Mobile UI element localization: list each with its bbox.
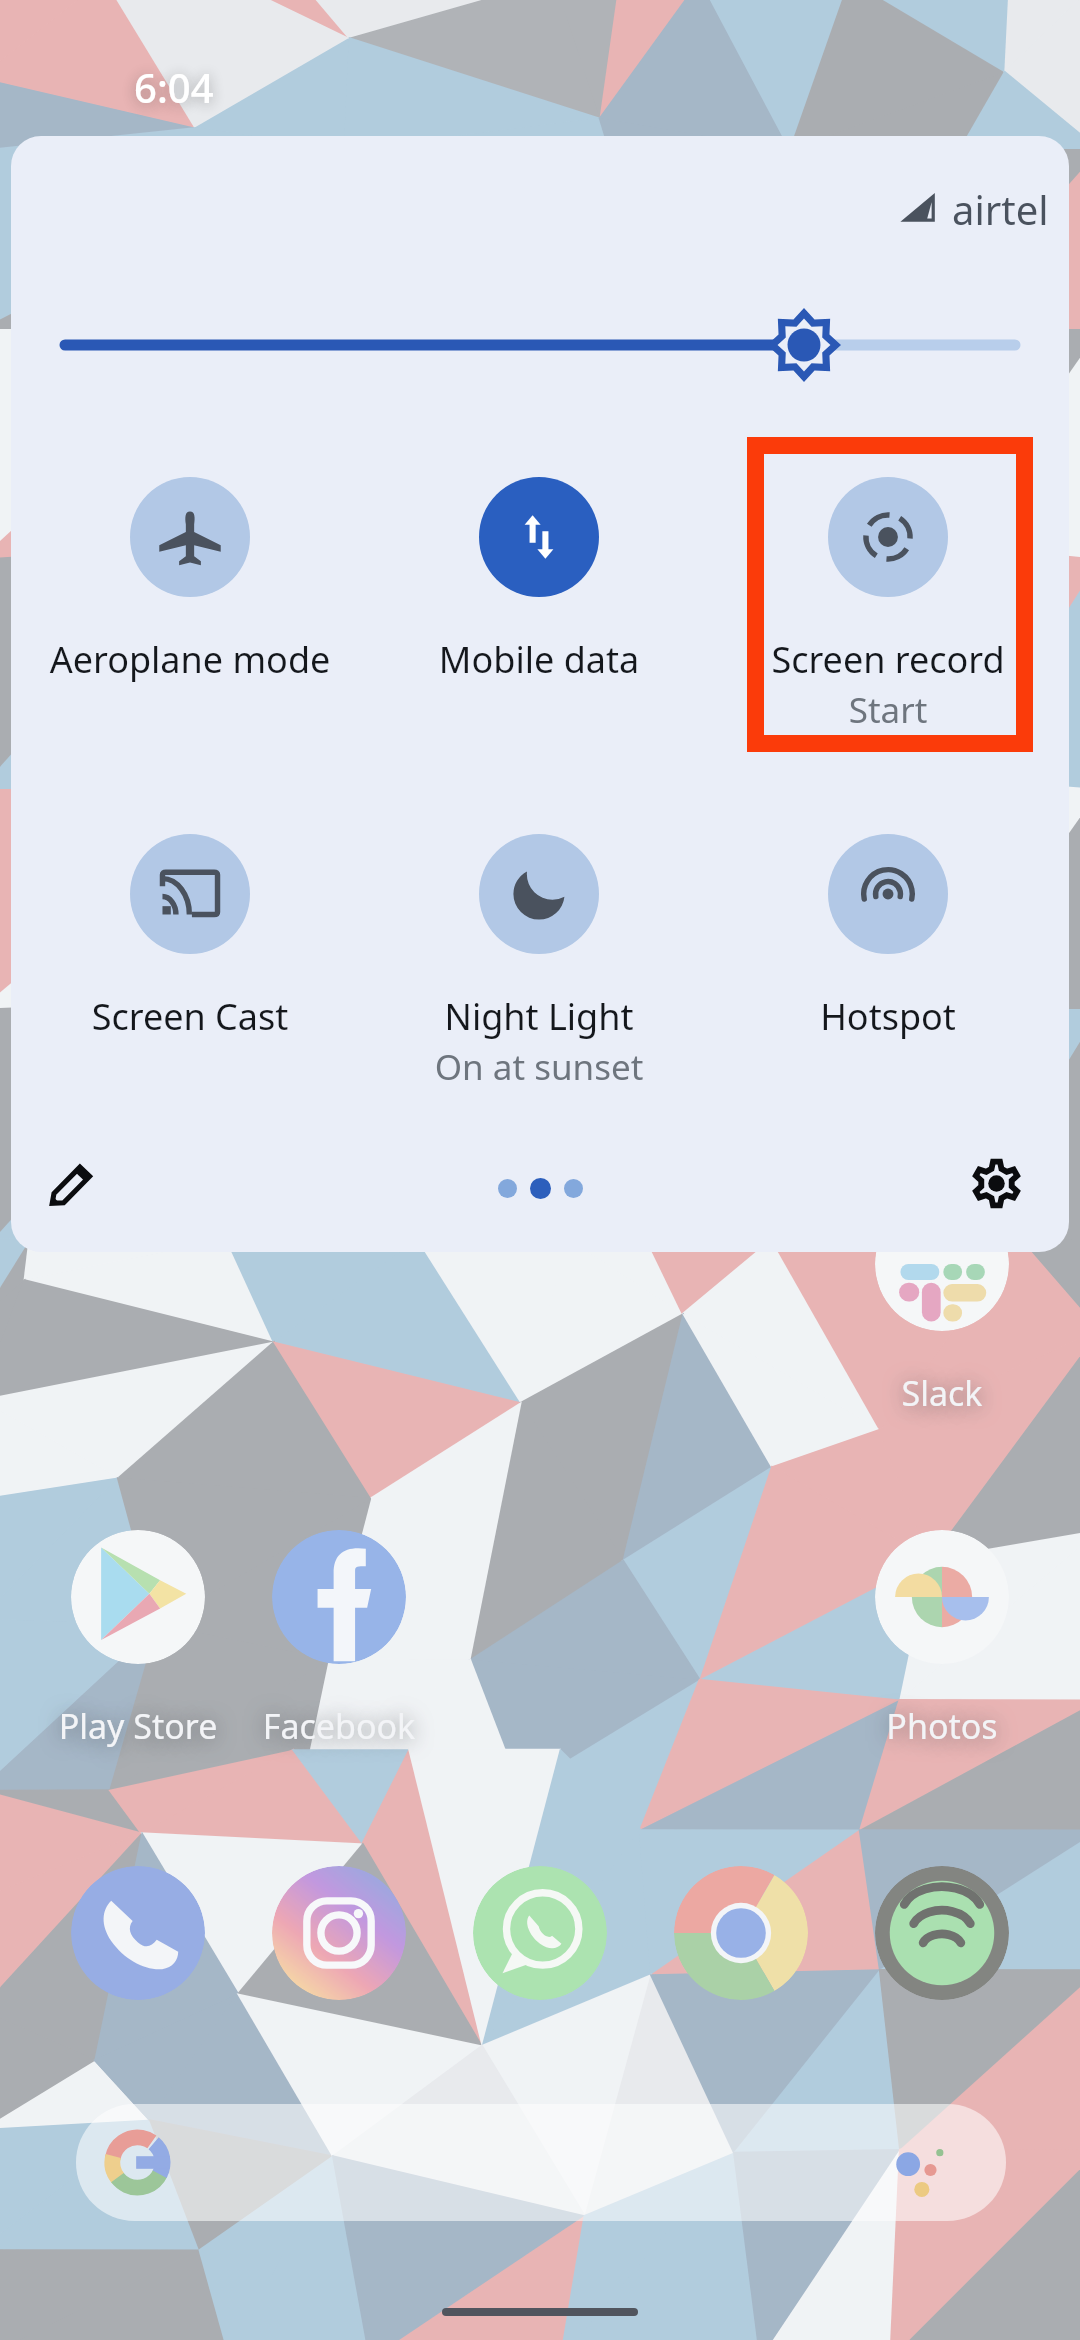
staticText: Screen Cast bbox=[20, 992, 360, 1041]
button[interactable]: Night Light bbox=[369, 834, 709, 1091]
button[interactable]: Play Store bbox=[38, 1530, 238, 1751]
staticText: 6:04 bbox=[134, 60, 214, 114]
button[interactable]: Slack bbox=[842, 1197, 1042, 1418]
button[interactable]: Chrome bbox=[674, 1866, 808, 2000]
button[interactable]: Spotify bbox=[875, 1866, 1009, 2000]
staticText: Screen record bbox=[718, 635, 1058, 684]
button[interactable]: Mobile data bbox=[369, 477, 709, 684]
staticText: Screen record bbox=[718, 635, 1058, 684]
staticText: On at sunset bbox=[369, 1043, 709, 1091]
staticText: Mobile data bbox=[369, 635, 709, 684]
staticText: Night Light bbox=[369, 992, 709, 1041]
button[interactable]: Instagram bbox=[272, 1866, 406, 2000]
button[interactable]: Phone bbox=[71, 1866, 205, 2000]
button[interactable]: Screen record bbox=[718, 477, 1058, 734]
staticText: Start bbox=[718, 686, 1058, 734]
staticText: Start bbox=[718, 686, 1058, 734]
button[interactable]: Screen record bbox=[718, 477, 1058, 734]
button[interactable]: Settings bbox=[956, 1140, 1036, 1220]
staticText: Aeroplane mode bbox=[20, 635, 360, 684]
button[interactable]: Hotspot bbox=[718, 834, 1058, 1041]
staticText: Play Store bbox=[38, 1703, 238, 1749]
button[interactable]: Aeroplane mode bbox=[20, 477, 360, 684]
staticText: Photos bbox=[842, 1703, 1042, 1749]
staticText: Slack bbox=[842, 1370, 1042, 1416]
button[interactable]: WhatsApp bbox=[473, 1866, 607, 2000]
button[interactable]: Screen Cast bbox=[20, 834, 360, 1041]
staticText: Facebook bbox=[239, 1703, 439, 1749]
button[interactable]: Search bbox=[76, 2104, 1006, 2221]
staticText: airtel bbox=[952, 182, 1049, 236]
button[interactable]: Edit tiles bbox=[32, 1143, 110, 1221]
button[interactable]: Facebook bbox=[239, 1530, 439, 1751]
staticText: Hotspot bbox=[718, 992, 1058, 1041]
button[interactable]: Photos bbox=[842, 1530, 1042, 1751]
